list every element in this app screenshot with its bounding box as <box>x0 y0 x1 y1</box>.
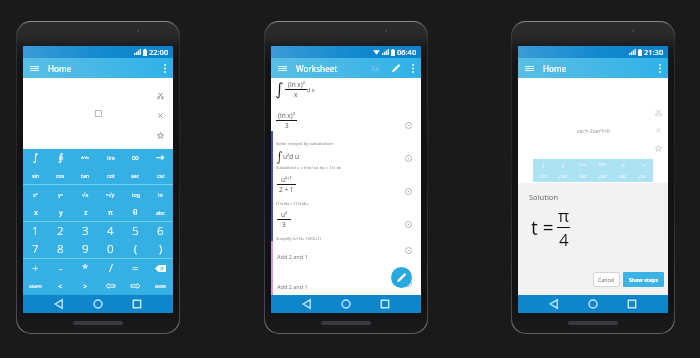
button[interactable]: GRAPH <box>23 277 48 295</box>
button[interactable]: More options <box>157 58 173 78</box>
staticText: √x <box>82 191 89 198</box>
button[interactable]: / <box>98 259 123 277</box>
staticText: ) <box>159 241 163 257</box>
button[interactable]: csc <box>148 166 173 184</box>
staticText: 0 <box>107 241 114 257</box>
staticText: 3 <box>285 121 289 130</box>
button[interactable]: ( <box>123 240 148 258</box>
button[interactable]: cot <box>98 166 123 184</box>
staticText: → <box>156 152 165 164</box>
button[interactable]: z <box>73 203 98 221</box>
button[interactable]: Step info <box>403 153 413 163</box>
button[interactable]: Examples <box>368 58 384 78</box>
button[interactable]: 1 <box>23 222 48 240</box>
staticText: sin <box>32 172 40 179</box>
staticText: u²d u <box>283 152 299 161</box>
button[interactable]: √x <box>73 185 98 203</box>
button[interactable]: sin <box>23 166 48 184</box>
button[interactable]: Step info <box>403 219 413 229</box>
button[interactable]: Home <box>87 295 109 313</box>
button[interactable]: Back <box>296 295 318 313</box>
button[interactable]: - <box>48 259 73 277</box>
button[interactable]: > <box>73 277 98 295</box>
button[interactable]: ) <box>148 240 173 258</box>
button[interactable]: 6 <box>148 222 173 240</box>
staticText: 06:40 <box>397 47 417 57</box>
button[interactable]: Cut <box>153 88 167 102</box>
button[interactable]: * <box>73 259 98 277</box>
button[interactable]: 8 <box>48 240 73 258</box>
button[interactable]: 0 <box>98 240 123 258</box>
button[interactable]: + <box>23 259 48 277</box>
staticText: < <box>58 281 63 291</box>
staticText: u³ <box>281 210 288 219</box>
staticText: Worksheet <box>296 63 338 74</box>
staticText: sec <box>131 172 140 179</box>
button[interactable]: More options <box>405 58 421 78</box>
button[interactable]: y <box>48 203 73 221</box>
button[interactable]: 4 <box>98 222 123 240</box>
button[interactable]: Left <box>98 277 123 295</box>
button[interactable]: Step info <box>403 186 413 196</box>
button[interactable]: Home <box>582 295 604 313</box>
button[interactable]: ln <box>148 185 173 203</box>
button[interactable]: Clear <box>153 108 167 122</box>
staticText: lim <box>599 161 607 168</box>
staticText: x <box>34 207 38 217</box>
button[interactable]: New worksheet <box>391 267 412 288</box>
staticText: z <box>84 207 88 217</box>
staticText: Home <box>48 63 72 74</box>
button[interactable]: Recents <box>374 295 396 313</box>
button[interactable]: Menu <box>23 58 45 78</box>
button[interactable]: ∫ <box>275 79 315 99</box>
button[interactable]: Backspace <box>148 259 173 277</box>
button[interactable]: tan <box>73 166 98 184</box>
button[interactable]: lim <box>98 149 123 166</box>
button[interactable]: < <box>48 277 73 295</box>
staticText: MORE <box>155 284 166 289</box>
button[interactable]: log <box>123 185 148 203</box>
button[interactable]: Edit <box>388 58 404 78</box>
button[interactable]: 5 <box>123 222 148 240</box>
button[interactable]: Back <box>543 295 565 313</box>
button[interactable]: π <box>98 203 123 221</box>
staticText: sec <box>619 173 627 180</box>
button[interactable]: ⁿ√y <box>98 185 123 203</box>
button[interactable]: cos <box>48 166 73 184</box>
staticText: (1/x)dx = (1/x)du <box>276 201 308 207</box>
staticText: Cancel <box>598 276 615 283</box>
staticText: Home <box>543 63 567 74</box>
button[interactable]: 7 <box>23 240 48 258</box>
button[interactable]: Recents <box>126 295 148 313</box>
button[interactable]: MORE <box>148 277 173 295</box>
button[interactable]: ∫ <box>276 149 299 164</box>
button[interactable]: 2 <box>48 222 73 240</box>
button[interactable]: → <box>148 149 173 166</box>
button[interactable]: Favourite <box>153 128 167 142</box>
button[interactable]: θ <box>123 203 148 221</box>
button[interactable]: More options <box>652 58 668 78</box>
button[interactable]: = <box>123 259 148 277</box>
button[interactable]: sec <box>123 166 148 184</box>
button[interactable]: Recents <box>621 295 643 313</box>
button[interactable]: Menu <box>271 58 293 78</box>
button[interactable]: x² <box>23 185 48 203</box>
button[interactable]: Home <box>335 295 357 313</box>
button[interactable]: d/dx <box>73 149 98 166</box>
button[interactable]: 3 <box>73 222 98 240</box>
button[interactable]: ∮ <box>48 149 73 166</box>
button[interactable]: 9 <box>73 240 98 258</box>
button[interactable]: ∞ <box>123 149 148 166</box>
button[interactable]: Step info <box>403 245 413 255</box>
button[interactable]: Menu <box>518 58 540 78</box>
button[interactable]: Show steps <box>623 272 664 287</box>
button[interactable]: Step info <box>403 120 413 130</box>
button[interactable]: Right <box>123 277 148 295</box>
staticText: 3 <box>82 223 89 239</box>
button[interactable]: x <box>23 203 48 221</box>
button[interactable]: Cancel <box>593 272 620 287</box>
button[interactable]: Back <box>48 295 70 313</box>
button[interactable]: abc <box>148 203 173 221</box>
button[interactable]: yⁿ <box>48 185 73 203</box>
button[interactable]: ∫ <box>23 149 48 166</box>
